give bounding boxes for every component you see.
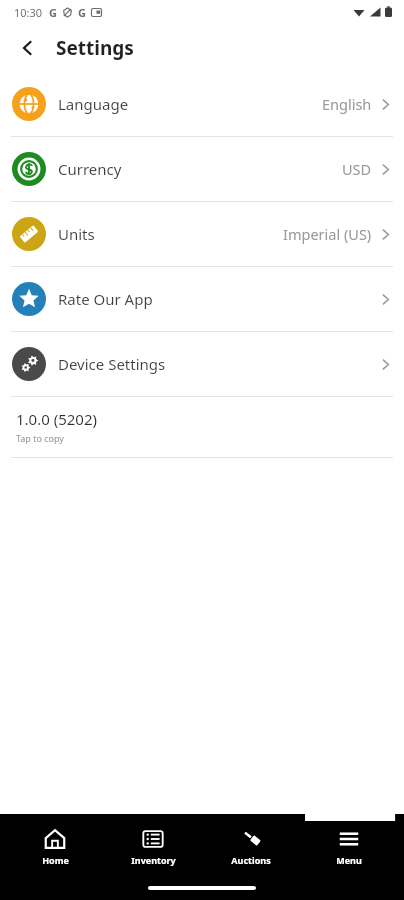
button[interactable]: Rate Our App (0, 267, 404, 331)
staticText: English (322, 94, 372, 114)
button[interactable]: Home (12, 824, 98, 870)
staticText: Device Settings (58, 354, 166, 374)
staticText: G (49, 5, 57, 20)
button[interactable]: 1.0.0 (5202) (0, 397, 404, 457)
button[interactable]: Units (0, 202, 404, 266)
staticText: 10:30 (14, 5, 43, 20)
staticText: Settings (56, 35, 134, 61)
button[interactable]: Currency (0, 137, 404, 201)
button[interactable]: Back (8, 28, 48, 68)
button[interactable]: Inventory (110, 824, 196, 870)
button[interactable]: Auctions (208, 824, 294, 870)
button[interactable]: Menu (306, 824, 392, 870)
staticText: Auctions (231, 854, 271, 866)
staticText: G (78, 5, 86, 20)
staticText: USD (342, 159, 372, 179)
staticText: Rate Our App (58, 289, 153, 309)
button[interactable]: Device Settings (0, 332, 404, 396)
staticText: Inventory (131, 854, 176, 866)
staticText: Menu (336, 854, 362, 866)
staticText: Tap to copy (16, 432, 64, 444)
staticText: Home (42, 854, 69, 866)
staticText: Units (58, 224, 95, 244)
staticText: Language (58, 94, 129, 114)
staticText: Currency (58, 159, 122, 179)
staticText: 1.0.0 (5202) (16, 409, 98, 429)
button[interactable]: Language (0, 72, 404, 136)
staticText: Imperial (US) (283, 224, 372, 244)
